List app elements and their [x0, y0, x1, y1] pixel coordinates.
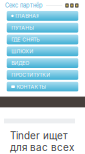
button[interactable]: Избранное — [65, 3, 69, 8]
button[interactable]: ГЛАВНАЯ — [7, 11, 78, 21]
staticText: Секс партнёр — [5, 2, 43, 9]
button[interactable]: КОНТАКТЫ — [7, 82, 78, 92]
button[interactable]: Секс партнёр — [5, 2, 43, 9]
button[interactable]: ПРОСТИТУТКИ — [7, 70, 78, 80]
staticText: ГЛАВНАЯ — [15, 13, 39, 19]
button[interactable]: ВИДЕО — [7, 58, 78, 68]
staticText: Tinder ищет — [10, 130, 68, 141]
button[interactable]: ШЛЮХИ — [7, 46, 78, 56]
button[interactable]: Закладки — [70, 3, 74, 8]
staticText: ПУТАНЫ — [11, 24, 34, 31]
staticText: КОНТАКТЫ — [16, 83, 46, 90]
staticText: ПРОСТИТУТКИ — [11, 72, 50, 78]
button[interactable]: Поделиться — [75, 3, 78, 8]
button[interactable]: ПУТАНЫ — [7, 23, 78, 33]
staticText: для вас всех — [10, 141, 74, 153]
button[interactable]: ГДЕ СНЯТЬ — [7, 35, 78, 44]
staticText: ГДЕ СНЯТЬ — [11, 36, 39, 43]
staticText: ШЛЮХИ — [11, 48, 33, 55]
staticText: ВИДЕО — [11, 60, 29, 66]
